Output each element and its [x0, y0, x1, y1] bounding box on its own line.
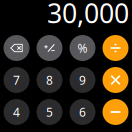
button[interactable]: Percent: [66, 32, 99, 64]
button[interactable]: Delete: [0, 32, 33, 64]
button[interactable]: Minus: [99, 96, 132, 128]
staticText: 30,000: [47, 0, 129, 30]
staticText: 7: [13, 72, 20, 88]
button[interactable]: Plus minus: [33, 32, 66, 64]
button[interactable]: Multiply: [99, 64, 132, 96]
button[interactable]: 4: [0, 96, 33, 128]
button[interactable]: Divide: [99, 32, 132, 64]
button[interactable]: 8: [33, 64, 66, 96]
staticText: 6: [79, 104, 86, 120]
staticText: 9: [79, 72, 86, 88]
staticText: 5: [46, 104, 53, 120]
button[interactable]: 5: [33, 96, 66, 128]
staticText: 4: [13, 104, 20, 120]
staticText: %: [77, 40, 87, 56]
button[interactable]: 6: [66, 96, 99, 128]
staticText: 8: [46, 72, 53, 88]
button[interactable]: 9: [66, 64, 99, 96]
button[interactable]: 7: [0, 64, 33, 96]
